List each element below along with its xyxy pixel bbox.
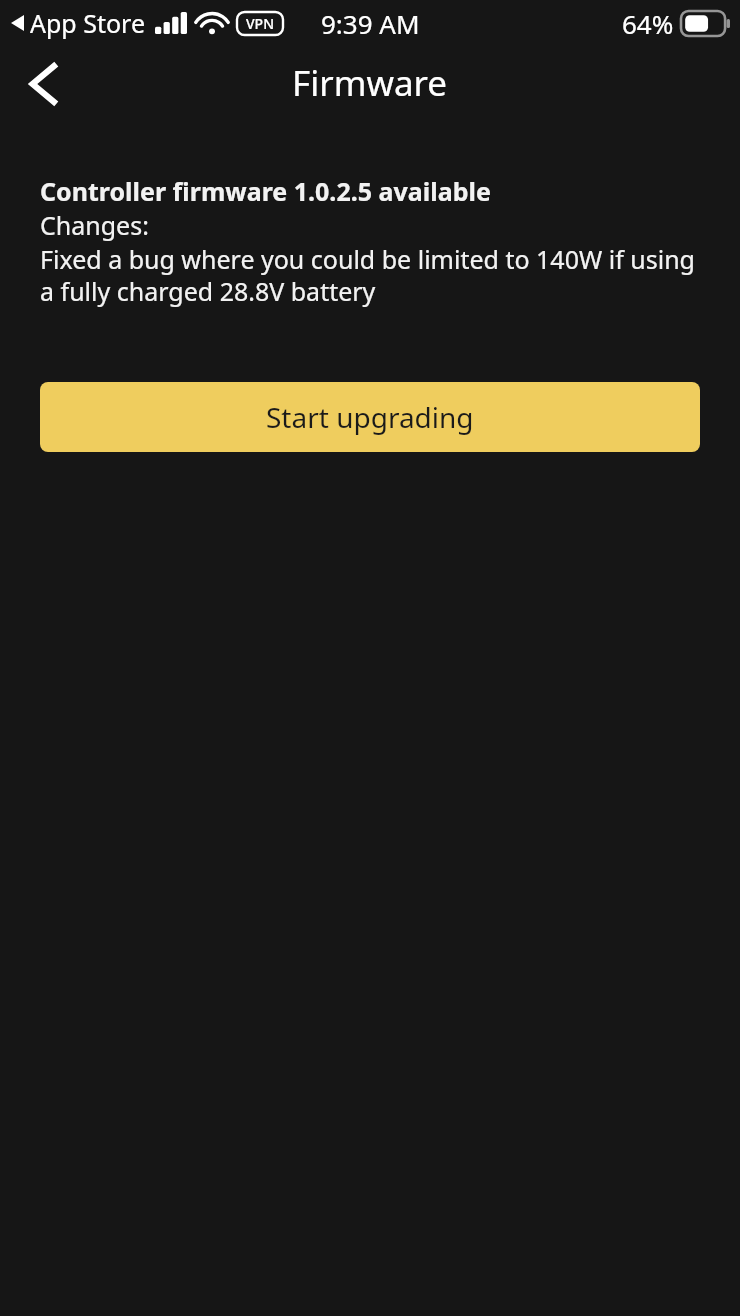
staticText: Controller firmware 1.0.2.5 available	[40, 174, 491, 208]
staticText: Start upgrading	[266, 398, 474, 436]
staticText: 64%	[622, 6, 674, 41]
staticText: VPN	[246, 14, 275, 33]
staticText: Changes:	[40, 208, 149, 242]
staticText: 9:39 AM	[321, 6, 420, 41]
staticText: Fixed a bug where you could be limited t…	[40, 242, 700, 308]
button[interactable]: Back	[14, 53, 72, 115]
button[interactable]: Start upgrading	[40, 382, 700, 452]
staticText: Firmware	[292, 59, 448, 107]
staticText: App Store	[30, 6, 146, 40]
